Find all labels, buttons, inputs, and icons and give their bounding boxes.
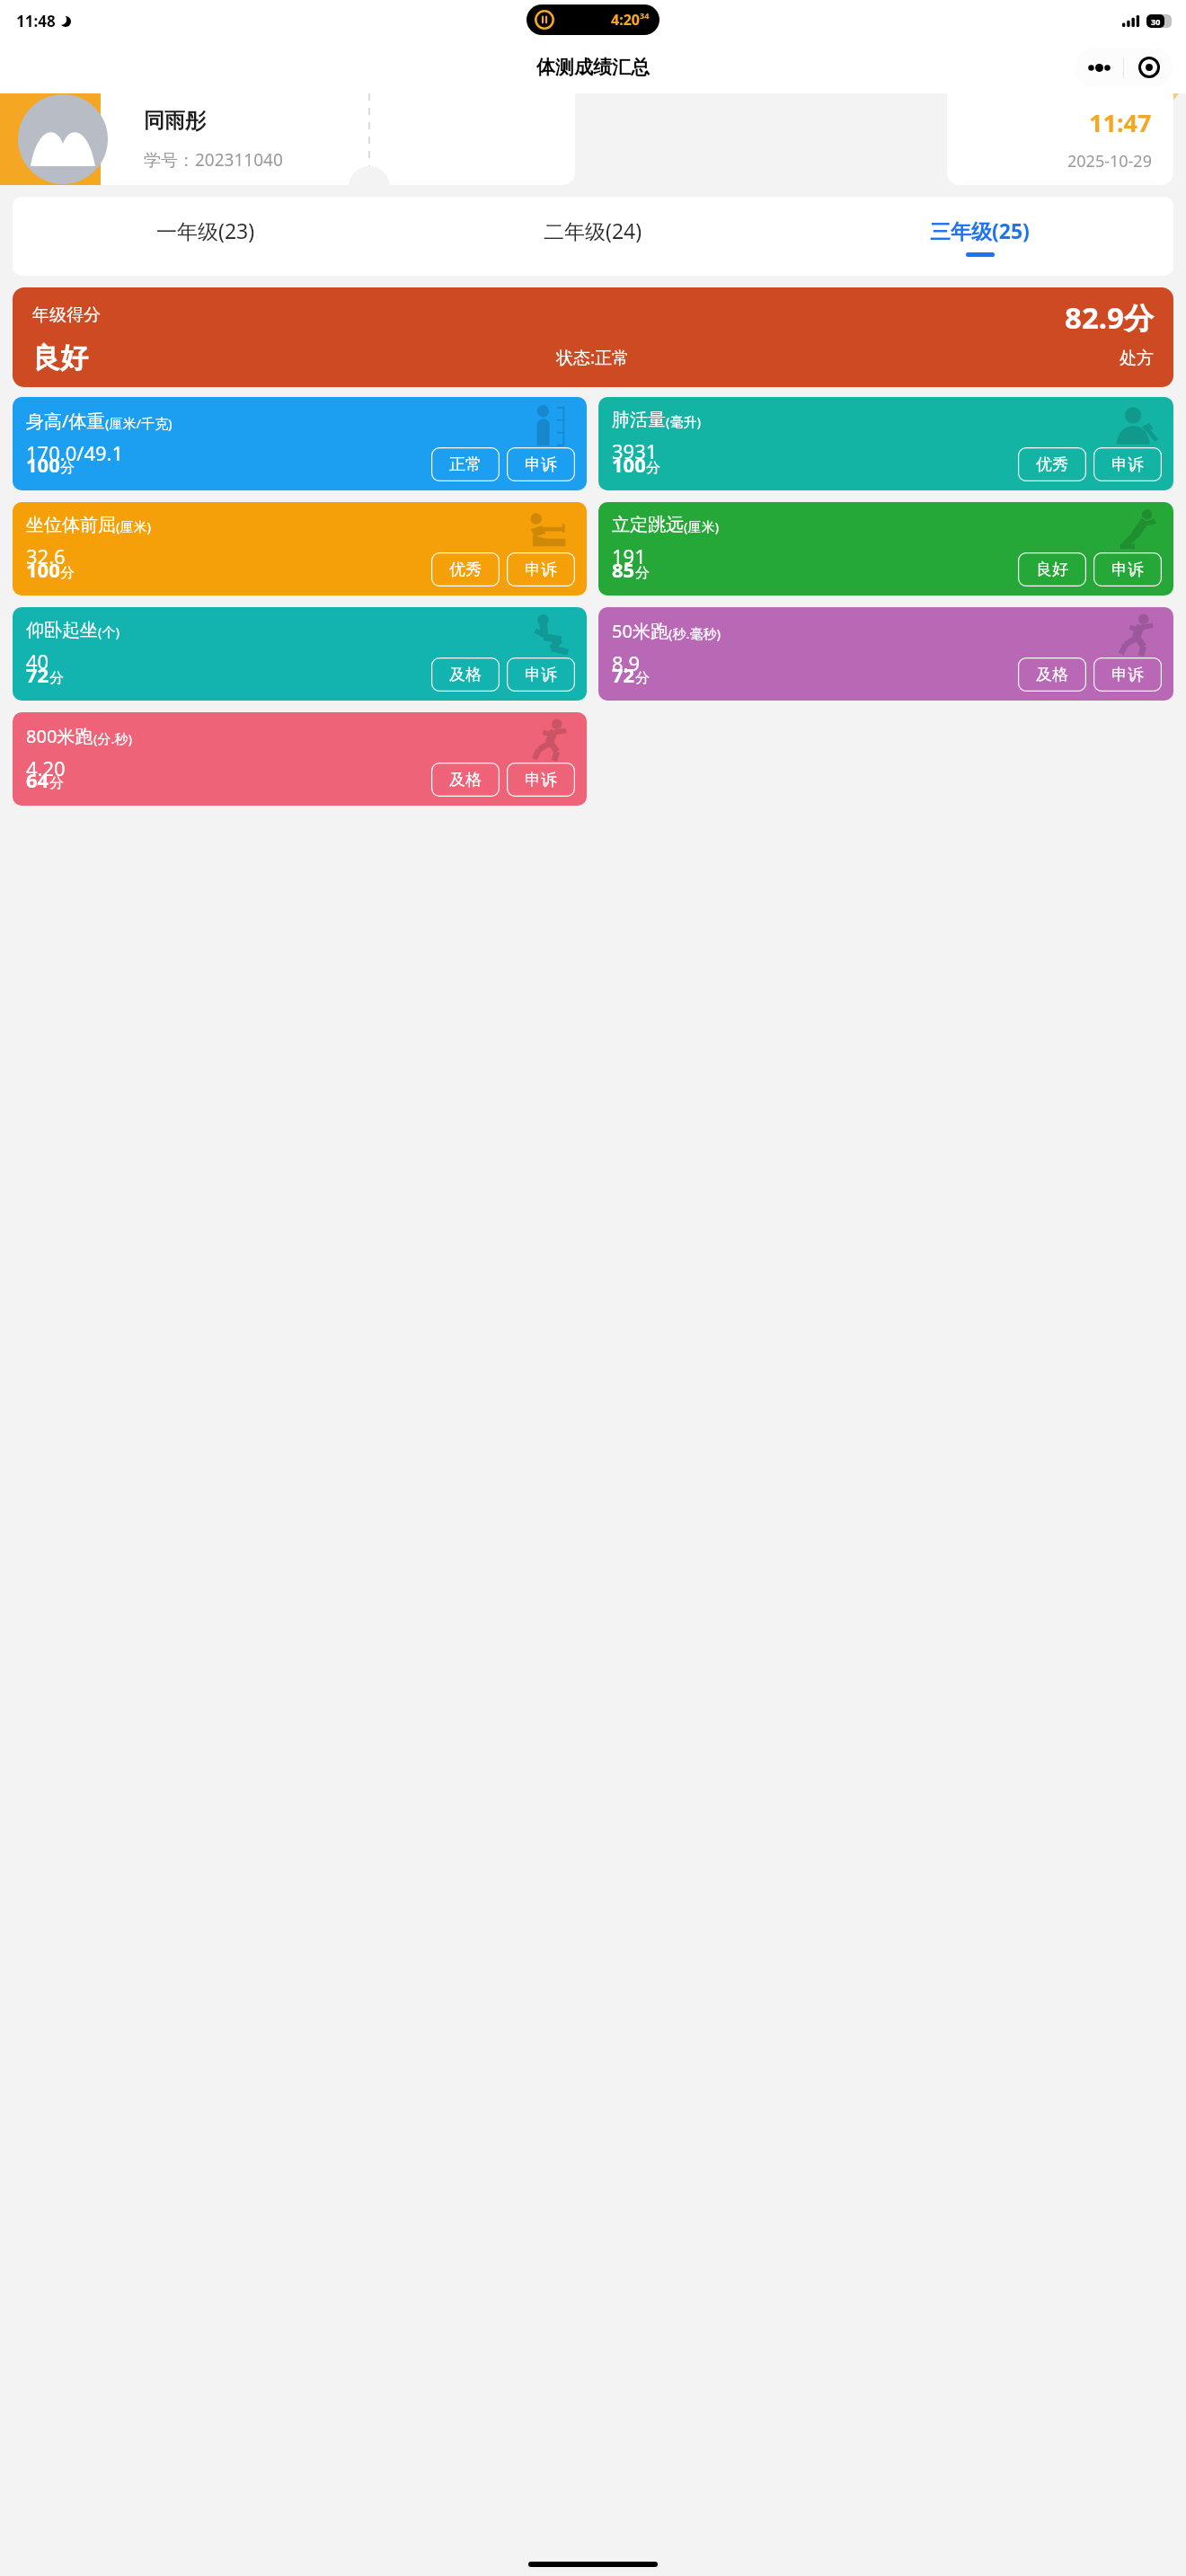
staticText: 申诉 (525, 770, 557, 790)
button[interactable]: 申诉 (507, 447, 575, 481)
button[interactable]: 仰卧起坐 (13, 607, 587, 701)
button[interactable]: 身高/体重 (13, 397, 587, 490)
staticText: 正常 (449, 454, 482, 475)
staticText: 8.9 (612, 649, 641, 676)
button[interactable]: 良好 (1018, 552, 1086, 587)
staticText: 82.9分 (1065, 297, 1154, 338)
staticText: 800米跑 (26, 724, 93, 748)
staticText: 分 (635, 669, 650, 687)
button[interactable]: 申诉 (1093, 657, 1162, 692)
staticText: 立定跳远 (612, 514, 684, 536)
staticText: 同雨彤 (144, 108, 206, 134)
button[interactable]: 申诉 (1093, 552, 1162, 587)
staticText: 申诉 (525, 560, 557, 580)
button[interactable]: 及格 (431, 657, 500, 692)
staticText: (厘米/千克) (105, 414, 173, 432)
staticText: 2025-10-29 (1067, 150, 1152, 172)
staticText: 体测成绩汇总 (536, 56, 650, 79)
button[interactable]: More options (1075, 48, 1123, 87)
staticText: 50米跑 (612, 619, 668, 643)
button[interactable]: 申诉 (507, 657, 575, 692)
staticText: 三年级(25) (930, 216, 1030, 244)
staticText: 处方 (1120, 348, 1154, 369)
staticText: 仰卧起坐 (26, 619, 98, 641)
button[interactable]: 正常 (431, 447, 500, 481)
staticText: 及格 (1036, 665, 1068, 685)
staticText: 分 (635, 564, 650, 582)
staticText: (厘米) (116, 517, 152, 535)
staticText: 二年级(24) (544, 216, 642, 244)
staticText: 72 (26, 661, 49, 688)
staticText: 一年级(23) (156, 216, 255, 244)
button[interactable]: 优秀 (1018, 447, 1086, 481)
staticText: 申诉 (525, 665, 557, 685)
staticText: 申诉 (1111, 665, 1144, 685)
staticText: 申诉 (1111, 560, 1144, 580)
staticText: 64 (26, 766, 49, 793)
staticText: 11:48 (16, 11, 56, 31)
staticText: (厘米) (684, 517, 720, 535)
staticText: 32.6 (26, 543, 66, 569)
button[interactable]: 及格 (431, 763, 500, 797)
staticText: 分 (646, 459, 660, 477)
staticText: (毫升) (666, 412, 702, 430)
staticText: 良好 (1036, 560, 1068, 580)
button[interactable]: 立定跳远 (598, 502, 1173, 595)
staticText: 分 (49, 669, 64, 687)
staticText: 良好 (32, 340, 88, 375)
staticText: 肺活量 (612, 409, 666, 431)
staticText: 34 (640, 10, 650, 21)
staticText: 及格 (449, 770, 482, 790)
button[interactable]: Close (1124, 48, 1173, 87)
button[interactable]: 二年级(24) (399, 197, 786, 276)
staticText: (个) (98, 622, 120, 640)
staticText: 身高/体重 (26, 409, 105, 433)
staticText: 40 (26, 648, 49, 675)
button[interactable]: 申诉 (1093, 447, 1162, 481)
staticText: 分 (60, 564, 75, 582)
staticText: 170.0/49.1 (26, 439, 124, 466)
staticText: 3931 (612, 437, 658, 464)
button[interactable]: 坐位体前屈 (13, 502, 587, 595)
button[interactable]: 优秀 (431, 552, 500, 587)
staticText: 4.20 (26, 754, 66, 781)
button[interactable]: 50米跑 (598, 607, 1173, 701)
staticText: 100 (26, 556, 60, 583)
staticText: 4:20 (611, 10, 640, 30)
staticText: (分.秒) (93, 729, 133, 747)
staticText: 申诉 (525, 454, 557, 475)
staticText: 坐位体前屈 (26, 514, 116, 536)
staticText: (秒.毫秒) (668, 624, 721, 642)
staticText: 100 (26, 451, 60, 478)
staticText: 100 (612, 451, 646, 478)
staticText: 优秀 (449, 560, 482, 580)
button[interactable]: 800米跑 (13, 712, 587, 806)
staticText: 72 (612, 661, 635, 688)
staticText: 分 (49, 774, 64, 792)
staticText: 11:47 (1089, 106, 1152, 139)
button[interactable]: 三年级(25) (786, 197, 1173, 276)
staticText: 191 (612, 543, 646, 569)
staticText: 30 (1151, 16, 1161, 27)
staticText: 申诉 (1111, 454, 1144, 475)
button[interactable]: 申诉 (507, 552, 575, 587)
staticText: 优秀 (1036, 454, 1068, 475)
staticText: 85 (612, 556, 635, 583)
staticText: 年级得分 (32, 304, 101, 326)
button[interactable]: 年级得分 (13, 287, 1173, 387)
staticText: 学号：202311040 (144, 148, 283, 172)
button[interactable]: 及格 (1018, 657, 1086, 692)
staticText: 状态:正常 (556, 346, 630, 369)
button[interactable]: 一年级(23) (13, 197, 399, 276)
staticText: 分 (60, 459, 75, 477)
staticText: 及格 (449, 665, 482, 685)
button[interactable]: 肺活量 (598, 397, 1173, 490)
button[interactable]: 申诉 (507, 763, 575, 797)
